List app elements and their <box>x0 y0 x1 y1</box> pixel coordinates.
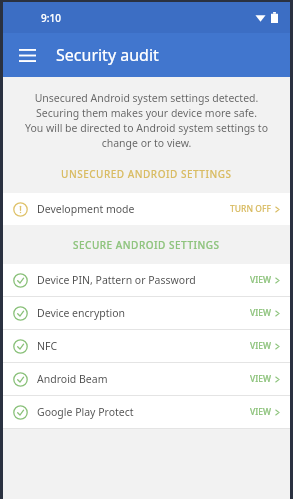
button[interactable]: Development mode <box>3 193 290 225</box>
staticText: Development mode <box>37 202 135 216</box>
staticText: Device PIN, Pattern or Password <box>37 273 196 287</box>
staticText: 9:10 <box>41 11 61 25</box>
staticText: Device encryption <box>37 306 126 320</box>
button[interactable]: Google Play Protect <box>3 396 290 428</box>
staticText: UNSECURED ANDROID SETTINGS <box>61 167 232 181</box>
staticText: VIEW <box>250 406 271 418</box>
button[interactable]: NFC <box>3 330 290 362</box>
staticText: Security audit <box>56 44 159 66</box>
staticText: VIEW <box>250 307 271 319</box>
staticText: Google Play Protect <box>37 405 134 419</box>
button[interactable]: Device encryption <box>3 297 290 329</box>
staticText: VIEW <box>250 340 271 352</box>
button[interactable]: Device PIN, Pattern or Password <box>3 264 290 296</box>
staticText: Android Beam <box>37 372 108 386</box>
staticText: SECURE ANDROID SETTINGS <box>73 238 220 252</box>
staticText: VIEW <box>250 274 271 286</box>
button[interactable]: Android Beam <box>3 363 290 395</box>
staticText: TURN OFF <box>230 203 271 215</box>
staticText: VIEW <box>250 373 271 385</box>
staticText: NFC <box>37 339 58 353</box>
staticText: Unsecured Android system settings detect… <box>11 91 282 150</box>
button[interactable]: Open navigation menu <box>11 39 43 71</box>
